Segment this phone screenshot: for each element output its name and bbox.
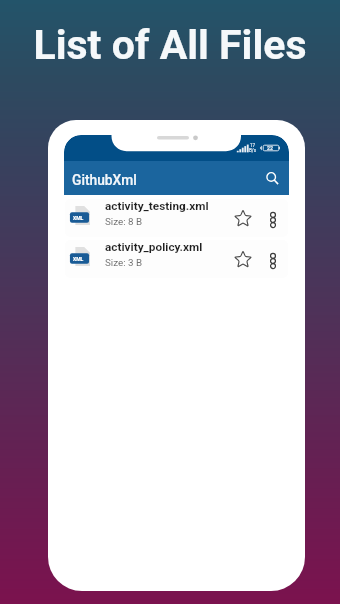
button[interactable]: More options [264,211,282,229]
staticText: B/s [249,148,257,153]
staticText: List of All Files [0,21,340,69]
staticText: 17 [250,143,256,148]
button[interactable]: Favorite [231,247,255,271]
staticText: activity_testing.xml [105,199,209,213]
staticText: XML [73,215,84,221]
staticText: 22 [267,145,273,151]
button[interactable]: XML [65,240,288,278]
button[interactable]: Search [261,167,283,189]
button[interactable]: Favorite [231,206,255,230]
staticText: GithubXml [72,172,137,188]
staticText: activity_policy.xml [105,240,203,254]
button[interactable]: More options [264,252,282,270]
staticText: XML [73,256,84,262]
staticText: Size: 3 B [105,257,143,268]
button[interactable]: XML [65,199,288,237]
staticText: Size: 8 B [105,216,143,227]
